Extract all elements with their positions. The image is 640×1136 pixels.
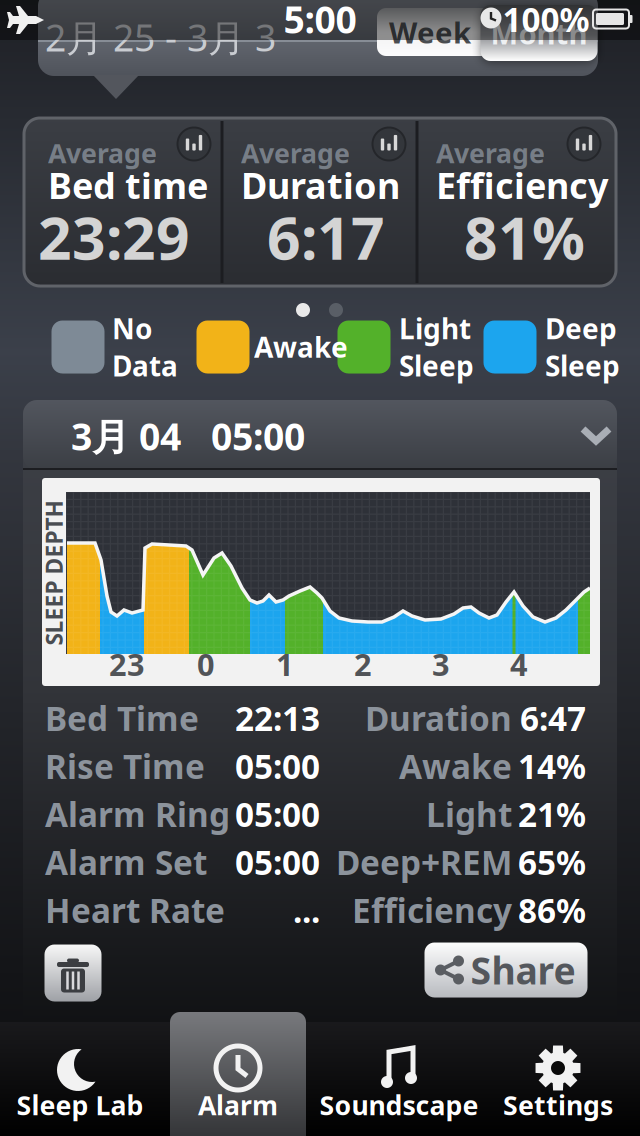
button[interactable]: 3月 04 05:00 [23,400,617,470]
button[interactable]: Show Duration chart [372,127,405,160]
staticText: Deep+REM [336,840,512,884]
staticText: Week [389,12,471,51]
staticText: 05:00 [235,840,320,884]
staticText: 22:13 [235,696,320,740]
button[interactable]: Month [480,5,597,61]
staticText: Awake [254,328,348,366]
staticText: 4 [510,644,528,684]
button[interactable]: Show Efficiency chart [567,127,600,160]
button[interactable]: Alarm [168,1022,308,1136]
staticText: 100% [502,0,589,41]
button[interactable]: Soundscape [329,1022,469,1136]
staticText: 2月 25 - 3月 3 [45,12,276,62]
staticText: 3 [432,644,450,684]
staticText: 2 [354,644,372,684]
staticText: Average [241,135,350,171]
staticText: Efficiency [436,161,609,209]
staticText: 05:00 [235,744,320,788]
staticText: Average [48,135,157,171]
staticText: Bed time [48,161,208,209]
staticText: Alarm Set [45,840,207,884]
staticText: 6:47 [520,696,586,740]
staticText: 6:17 [267,198,385,276]
staticText: 23 [109,644,145,684]
staticText: 5:00 [283,0,356,44]
staticText: 1 [276,644,294,684]
staticText: Duration [365,696,512,740]
staticText: Settings [503,1087,613,1123]
staticText: Awake [399,744,512,788]
staticText: Deep Sleep [545,310,620,384]
staticText: 14% [518,744,586,788]
staticText: Bed Time [45,696,199,740]
staticText: SLEEP DEPTH [0,558,126,588]
staticText: Average [436,135,545,171]
staticText: 81% [464,198,585,276]
staticText: Sleep Lab [16,1087,143,1123]
staticText: Alarm [198,1087,278,1123]
button[interactable]: Share [424,942,587,997]
staticText: 86% [518,888,586,932]
button[interactable]: Settings [488,1022,628,1136]
staticText: 3月 04 05:00 [71,411,305,461]
staticText: Efficiency [352,888,512,932]
button[interactable]: Week [378,8,482,56]
staticText: Alarm Ring [45,792,230,836]
staticText: Share [470,945,575,995]
staticText: Duration [241,161,400,209]
button[interactable]: Sleep Lab [10,1022,150,1136]
staticText: No Data [112,310,178,384]
staticText: Light Sleep [399,310,474,384]
staticText: 21% [518,792,586,836]
staticText: 65% [518,840,586,884]
staticText: Month [490,13,587,52]
button[interactable]: Show Bed time chart [177,127,210,160]
button[interactable]: Delete [44,944,101,1001]
staticText: Light [426,792,512,836]
staticText: Soundscape [319,1087,478,1123]
staticText: 05:00 [235,792,320,836]
staticText: 0 [197,644,215,684]
staticText: Heart Rate [45,888,225,932]
staticText: Rise Time [45,744,205,788]
staticText: 23:29 [38,198,190,276]
staticText: ... [293,888,320,932]
